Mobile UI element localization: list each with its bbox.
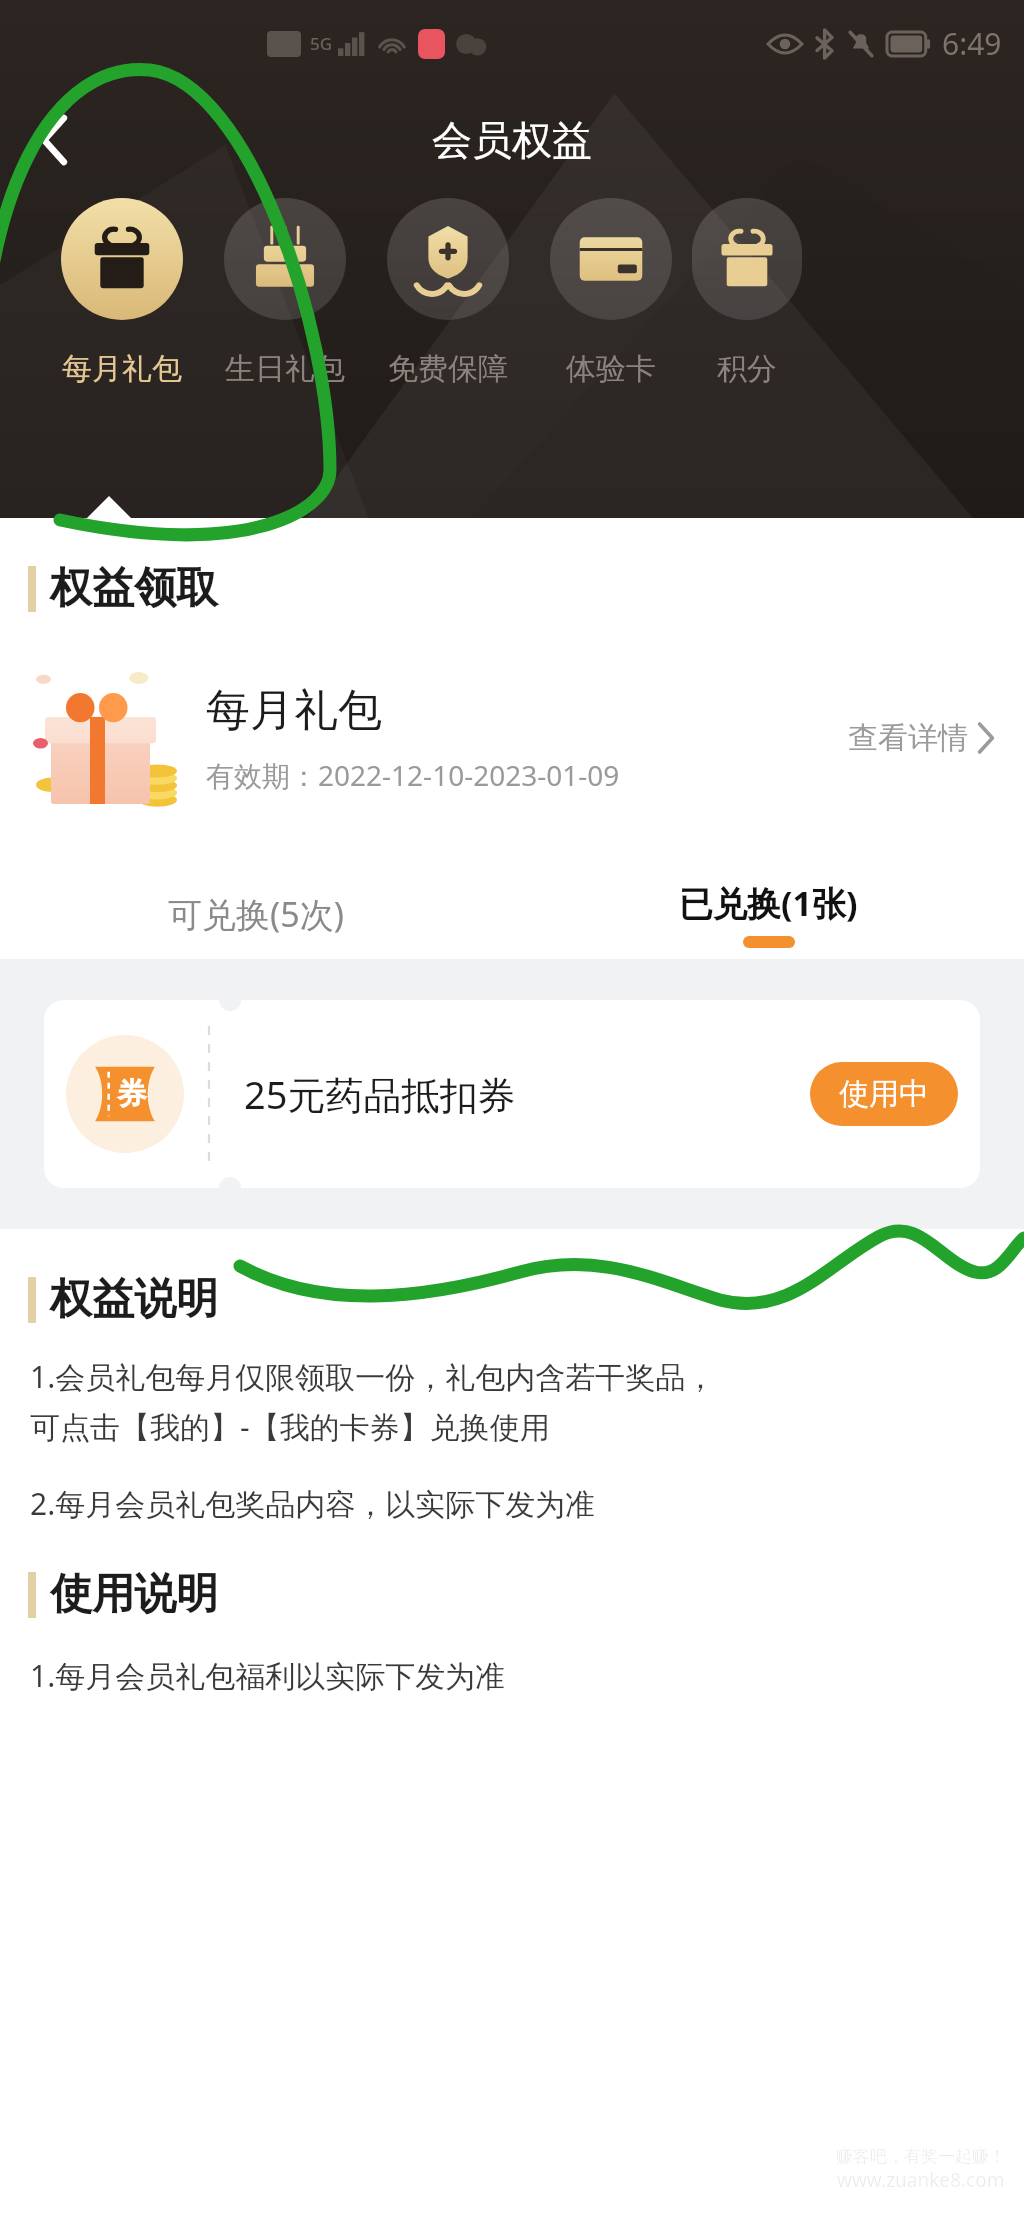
staticText: www.zuanke8.com <box>837 2167 1005 2193</box>
button[interactable]: 券 <box>44 1000 980 1188</box>
staticText: 使用中 <box>839 1075 929 1113</box>
button[interactable]: 可兑换(5次) <box>0 869 512 959</box>
staticText: 25元药品抵扣券 <box>244 1068 810 1120</box>
button[interactable]: 已兑换(1张) <box>512 869 1024 959</box>
staticText: 赚客吧，有奖一起赚！ <box>836 2146 1006 2167</box>
button[interactable]: 生日礼包 <box>203 198 366 388</box>
button[interactable]: 体验卡 <box>529 198 692 388</box>
staticText: 1.每月会员礼包福利以实际下发为准 <box>30 1655 506 1696</box>
staticText: 可兑换(5次) <box>168 891 344 937</box>
staticText: 6:49 <box>942 23 1002 64</box>
staticText: 每月礼包 <box>206 683 382 738</box>
staticText: 会员权益 <box>432 115 592 165</box>
staticText: 权益说明 <box>50 1273 218 1326</box>
staticText: 已兑换(1张) <box>679 880 858 926</box>
staticText: 免费保障 <box>388 350 508 388</box>
staticText: 券 <box>117 1075 147 1113</box>
staticText: 查看详情 <box>848 719 968 757</box>
staticText: 生日礼包 <box>225 350 345 388</box>
staticText: 权益领取 <box>50 562 218 615</box>
staticText: 使用说明 <box>50 1568 218 1621</box>
staticText: 每月礼包 <box>62 350 182 388</box>
staticText: 有效期：2022-12-10-2023-01-09 <box>206 756 620 794</box>
button[interactable]: 返回 <box>18 104 90 176</box>
button[interactable]: 每月礼包 <box>0 663 1024 813</box>
button[interactable]: 免费保障 <box>366 198 529 388</box>
button[interactable]: 使用中 <box>810 1062 958 1126</box>
button[interactable]: 每月礼包 <box>40 198 203 388</box>
staticText: 2.每月会员礼包奖品内容，以实际下发为准 <box>30 1483 596 1524</box>
staticText: 积分 <box>717 350 777 388</box>
staticText: 1.会员礼包每月仅限领取一份，礼包内含若干奖品， 可点击【我的】-【我的卡券】兑… <box>30 1356 716 1447</box>
staticText: 体验卡 <box>566 350 656 388</box>
staticText: 5G <box>310 32 333 55</box>
button[interactable]: 积分 <box>692 198 802 388</box>
